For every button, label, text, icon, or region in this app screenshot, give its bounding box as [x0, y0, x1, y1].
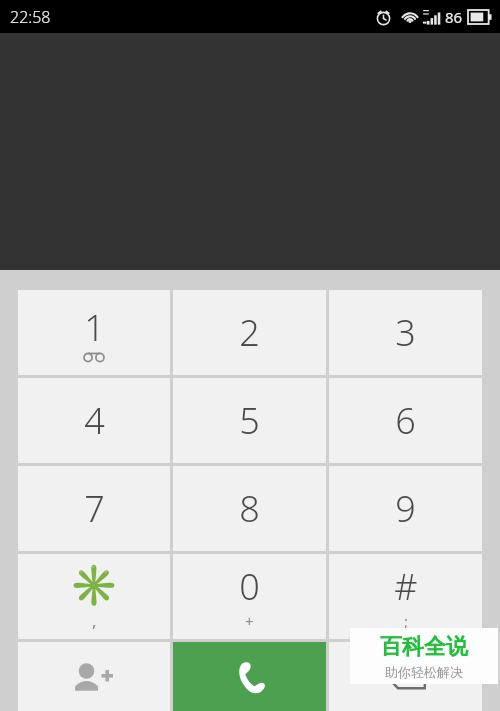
staticText: 6	[395, 396, 416, 445]
staticText: 7	[84, 484, 105, 533]
button[interactable]: 6	[329, 378, 482, 463]
button[interactable]: 9	[329, 466, 482, 551]
button[interactable]: Delete	[329, 642, 482, 711]
staticText: 4	[84, 396, 105, 445]
staticText: +	[245, 611, 254, 631]
staticText: 86	[445, 7, 463, 27]
staticText: 0	[239, 562, 260, 611]
button[interactable]: 2	[173, 290, 326, 375]
staticText: ;	[404, 611, 409, 631]
button[interactable]: 0	[173, 554, 326, 639]
button[interactable]: Call	[173, 642, 326, 711]
button[interactable]: Add contact	[18, 642, 170, 711]
staticText: ✳	[69, 562, 119, 609]
staticText: 8	[239, 484, 260, 533]
staticText: 助你轻松解决	[385, 664, 463, 680]
button[interactable]: 8	[173, 466, 326, 551]
staticText: 9	[395, 484, 416, 533]
staticText: #	[394, 562, 418, 611]
button[interactable]: 7	[18, 466, 170, 551]
staticText: 5	[239, 396, 260, 445]
staticText: 2	[239, 308, 260, 357]
button[interactable]: 3	[329, 290, 482, 375]
button[interactable]: ✳	[18, 554, 170, 639]
button[interactable]: 5	[173, 378, 326, 463]
staticText: 百科全说	[380, 633, 468, 661]
button[interactable]: 4	[18, 378, 170, 463]
staticText: 3	[395, 308, 416, 357]
button[interactable]: 1	[18, 290, 170, 375]
staticText: 1	[84, 303, 105, 352]
button[interactable]: #	[329, 554, 482, 639]
staticText: 22:58	[10, 6, 51, 28]
staticText: ,	[92, 609, 97, 632]
